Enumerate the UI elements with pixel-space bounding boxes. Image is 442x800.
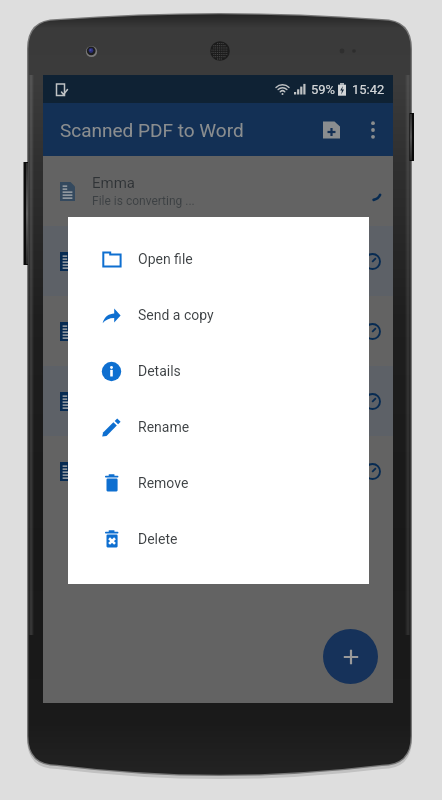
staticText: 59% [311, 82, 336, 97]
staticText: Delete [138, 531, 178, 547]
staticText: 02 Mar 2019, 11:47 [92, 474, 195, 488]
button[interactable]: Send a copy [68, 287, 369, 343]
button[interactable]: Emma [43, 156, 393, 226]
staticText: Open file [138, 251, 193, 267]
staticText: 15:42 [352, 82, 385, 97]
staticText: Report [92, 244, 137, 262]
staticText: File is converting ... [92, 194, 195, 208]
button[interactable]: History [352, 171, 392, 211]
staticText: Contract [92, 314, 150, 332]
staticText: Remove [138, 475, 189, 491]
button[interactable]: Report [43, 226, 393, 296]
staticText: Rename [138, 419, 190, 435]
button[interactable]: Rename [68, 399, 369, 455]
button[interactable]: More options [353, 110, 393, 150]
button[interactable]: History [352, 241, 392, 281]
button[interactable]: Open file [68, 231, 369, 287]
button[interactable]: Add [323, 629, 378, 684]
button[interactable]: Delete [68, 511, 369, 567]
button[interactable]: New scan [309, 108, 353, 152]
button[interactable]: Invoice [43, 366, 393, 436]
button[interactable]: Remove [68, 455, 369, 511]
button[interactable]: Contract [43, 296, 393, 366]
staticText: Emma [92, 174, 135, 192]
staticText: Send a copy [138, 307, 214, 323]
button[interactable]: History [352, 311, 392, 351]
button[interactable]: Scan 004 [43, 436, 393, 506]
button[interactable]: History [352, 381, 392, 421]
staticText: Scanned PDF to Word [60, 119, 244, 141]
staticText: 12 Mar 2019, 18:04 [92, 264, 195, 278]
button[interactable]: History [352, 451, 392, 491]
button[interactable]: Details [68, 343, 369, 399]
staticText: Details [138, 363, 181, 379]
